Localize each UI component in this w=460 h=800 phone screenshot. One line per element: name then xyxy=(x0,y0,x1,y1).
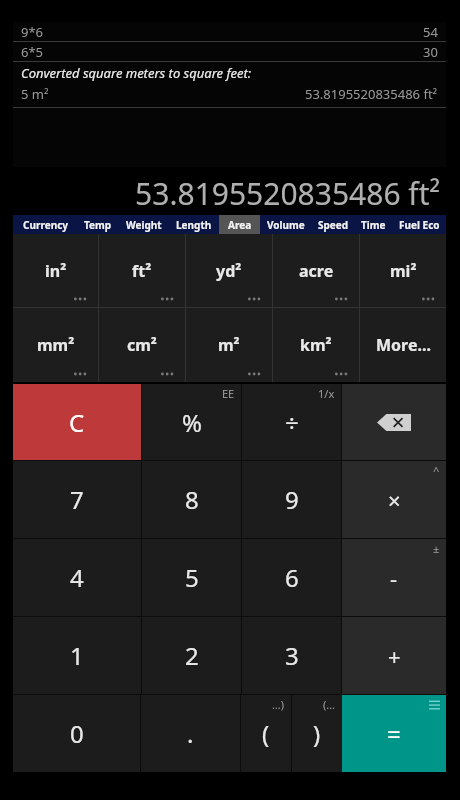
staticText: 9*6 xyxy=(21,23,44,41)
button[interactable]: Volume xyxy=(260,215,311,234)
button[interactable]: acre xyxy=(273,234,359,307)
staticText: 53.8195520835486 ft² xyxy=(305,85,438,103)
button[interactable]: = xyxy=(342,695,446,772)
button[interactable]: EE xyxy=(142,384,241,460)
button[interactable]: C xyxy=(13,384,141,460)
button[interactable]: ± xyxy=(342,539,446,616)
staticText: ÷ xyxy=(285,406,299,439)
staticText: 3 xyxy=(285,639,299,672)
button[interactable]: 3 xyxy=(242,617,341,694)
staticText: mi² xyxy=(390,260,417,282)
staticText: 30 xyxy=(423,43,438,61)
button[interactable]: 0 xyxy=(13,695,140,772)
button[interactable]: in² xyxy=(13,234,98,307)
staticText: Weight xyxy=(126,218,162,232)
staticText: m² xyxy=(218,334,240,356)
button[interactable]: km² xyxy=(273,308,359,382)
staticText: (… xyxy=(323,697,336,712)
staticText: acre xyxy=(299,260,334,282)
staticText: 6*5 xyxy=(21,43,44,61)
staticText: 1/x xyxy=(318,386,335,401)
staticText: Length xyxy=(176,218,212,232)
button[interactable]: m² xyxy=(186,308,272,382)
staticText: 0 xyxy=(70,717,84,750)
staticText: Fuel Eco xyxy=(399,218,440,232)
staticText: More... xyxy=(376,334,431,356)
button[interactable]: 6 xyxy=(242,539,341,616)
staticText: - xyxy=(390,563,398,593)
staticText: % xyxy=(182,406,202,439)
staticText: km² xyxy=(300,334,332,356)
button[interactable]: + xyxy=(342,617,446,694)
button[interactable]: 9 xyxy=(242,461,341,538)
button[interactable]: 7 xyxy=(13,461,141,538)
staticText: ± xyxy=(433,541,440,556)
button[interactable]: Weight xyxy=(118,215,169,234)
staticText: 4 xyxy=(70,561,84,594)
staticText: + xyxy=(388,641,401,671)
button[interactable]: Area xyxy=(219,215,260,234)
staticText: 9 xyxy=(285,483,299,516)
button[interactable]: 4 xyxy=(13,539,141,616)
button[interactable]: mm² xyxy=(13,308,98,382)
button[interactable]: Currency xyxy=(13,215,77,234)
button[interactable]: mi² xyxy=(360,234,446,307)
button[interactable]: Fuel Eco xyxy=(392,215,446,234)
button[interactable]: (… xyxy=(292,695,342,772)
staticText: Temp xyxy=(84,218,112,232)
button[interactable]: ^ xyxy=(342,461,446,538)
button[interactable]: …) xyxy=(241,695,291,772)
button[interactable]: 1/x xyxy=(242,384,341,460)
staticText: Converted square meters to square feet: xyxy=(21,64,252,82)
staticText: 5 m² xyxy=(21,85,49,103)
button[interactable]: 8 xyxy=(142,461,241,538)
button[interactable]: cm² xyxy=(99,308,185,382)
staticText: mm² xyxy=(37,334,75,356)
button[interactable]: Backspace xyxy=(342,384,446,460)
staticText: ft² xyxy=(132,260,152,282)
staticText: C xyxy=(69,406,85,439)
staticText: cm² xyxy=(127,334,157,356)
staticText: 6 xyxy=(285,561,299,594)
staticText: × xyxy=(388,485,401,515)
staticText: in² xyxy=(45,260,67,282)
button[interactable]: Time xyxy=(355,215,392,234)
staticText: ^ xyxy=(433,463,440,478)
staticText: yd² xyxy=(216,260,242,282)
button[interactable]: Temp xyxy=(77,215,118,234)
staticText: Volume xyxy=(267,218,305,232)
staticText: 8 xyxy=(185,483,199,516)
staticText: Currency xyxy=(23,218,68,232)
staticText: Time xyxy=(361,218,386,232)
button[interactable]: 2 xyxy=(142,617,241,694)
button[interactable]: 1 xyxy=(13,617,141,694)
button[interactable]: 5 xyxy=(142,539,241,616)
button[interactable]: ft² xyxy=(99,234,185,307)
staticText: 1 xyxy=(70,639,84,672)
staticText: Area xyxy=(228,218,252,232)
staticText: 2 xyxy=(185,639,199,672)
staticText: 54 xyxy=(423,23,438,41)
staticText: = xyxy=(387,717,401,750)
button[interactable]: More... xyxy=(360,308,446,382)
staticText: 53.8195520835486 ft² xyxy=(135,173,440,214)
staticText: 5 xyxy=(185,561,199,594)
staticText: ) xyxy=(313,717,321,750)
button[interactable]: yd² xyxy=(186,234,272,307)
button[interactable]: Length xyxy=(169,215,219,234)
staticText: . xyxy=(187,717,194,750)
button[interactable]: Speed xyxy=(311,215,355,234)
staticText: 7 xyxy=(70,483,84,516)
button[interactable]: . xyxy=(141,695,240,772)
staticText: EE xyxy=(222,386,235,401)
staticText: ( xyxy=(262,717,270,750)
staticText: Speed xyxy=(318,218,349,232)
staticText: …) xyxy=(272,697,285,712)
